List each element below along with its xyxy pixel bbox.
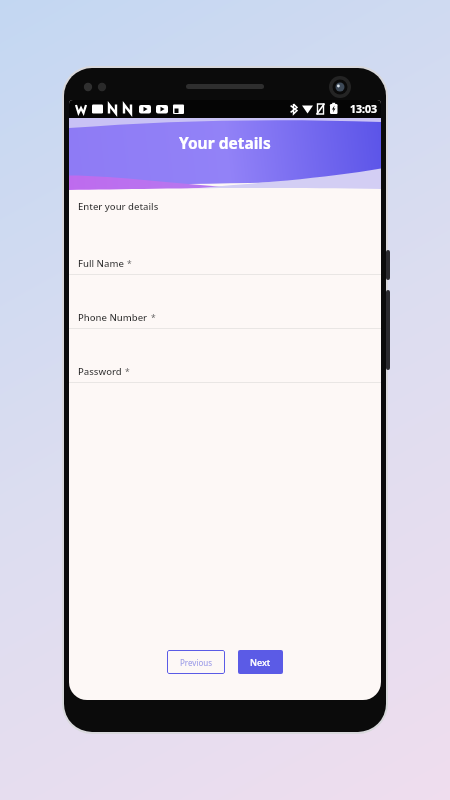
button[interactable]: Password [69,361,381,415]
staticText: Previous [180,657,213,668]
staticText: Enter your details [78,200,159,213]
button[interactable]: Phone Number [69,307,381,361]
staticText: * [151,312,156,324]
staticText: Phone Number [78,311,148,324]
staticText: Your details [179,132,271,153]
staticText: 13:03 [350,102,377,116]
button[interactable]: Full Name [69,253,381,307]
button[interactable]: Previous [167,650,225,674]
staticText: Next [250,656,271,668]
staticText: * [125,366,130,378]
staticText: Full Name [78,257,124,270]
staticText: Password [78,365,122,378]
staticText: * [127,258,132,270]
button[interactable]: Next [238,650,283,674]
